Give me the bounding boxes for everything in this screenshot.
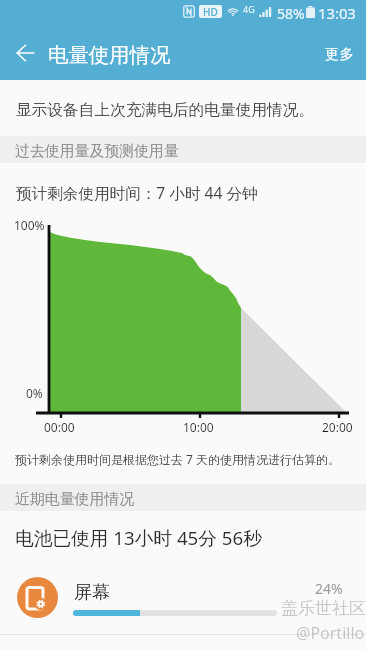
staticText: @Portillo (296, 622, 365, 644)
staticText: 20:00 (322, 419, 353, 435)
staticText: 13:03 (318, 3, 356, 23)
staticText: 近期电量使用情况 (15, 490, 135, 509)
staticText: 0% (26, 385, 43, 401)
staticText: 屏幕 (74, 581, 111, 604)
button[interactable]: Back (4, 32, 46, 74)
staticText: 24% (315, 579, 343, 598)
staticText: 00:00 (44, 419, 75, 435)
staticText: 58% (277, 4, 305, 23)
button[interactable]: 屏幕 (0, 565, 366, 630)
staticText: 电量使用情况 (48, 42, 171, 68)
staticText: 预计剩余使用时间：7 小时 44 分钟 (16, 182, 258, 203)
button[interactable]: 更多 (317, 37, 362, 71)
staticText: 显示设备自上次充满电后的电量使用情况。 (16, 100, 315, 120)
staticText: 盖乐世社区 (281, 598, 366, 619)
staticText: 预计剩余使用时间是根据您过去 7 天的使用情况进行估算的。 (15, 451, 341, 467)
staticText: 10:00 (183, 419, 214, 435)
staticText: 更多 (325, 45, 354, 63)
staticText: 过去使用量及预测使用量 (15, 142, 179, 161)
staticText: 100% (14, 217, 45, 233)
staticText: HD (203, 5, 218, 18)
staticText: 4G (243, 3, 255, 15)
staticText: 电池已使用 13小时 45分 56秒 (15, 525, 262, 551)
